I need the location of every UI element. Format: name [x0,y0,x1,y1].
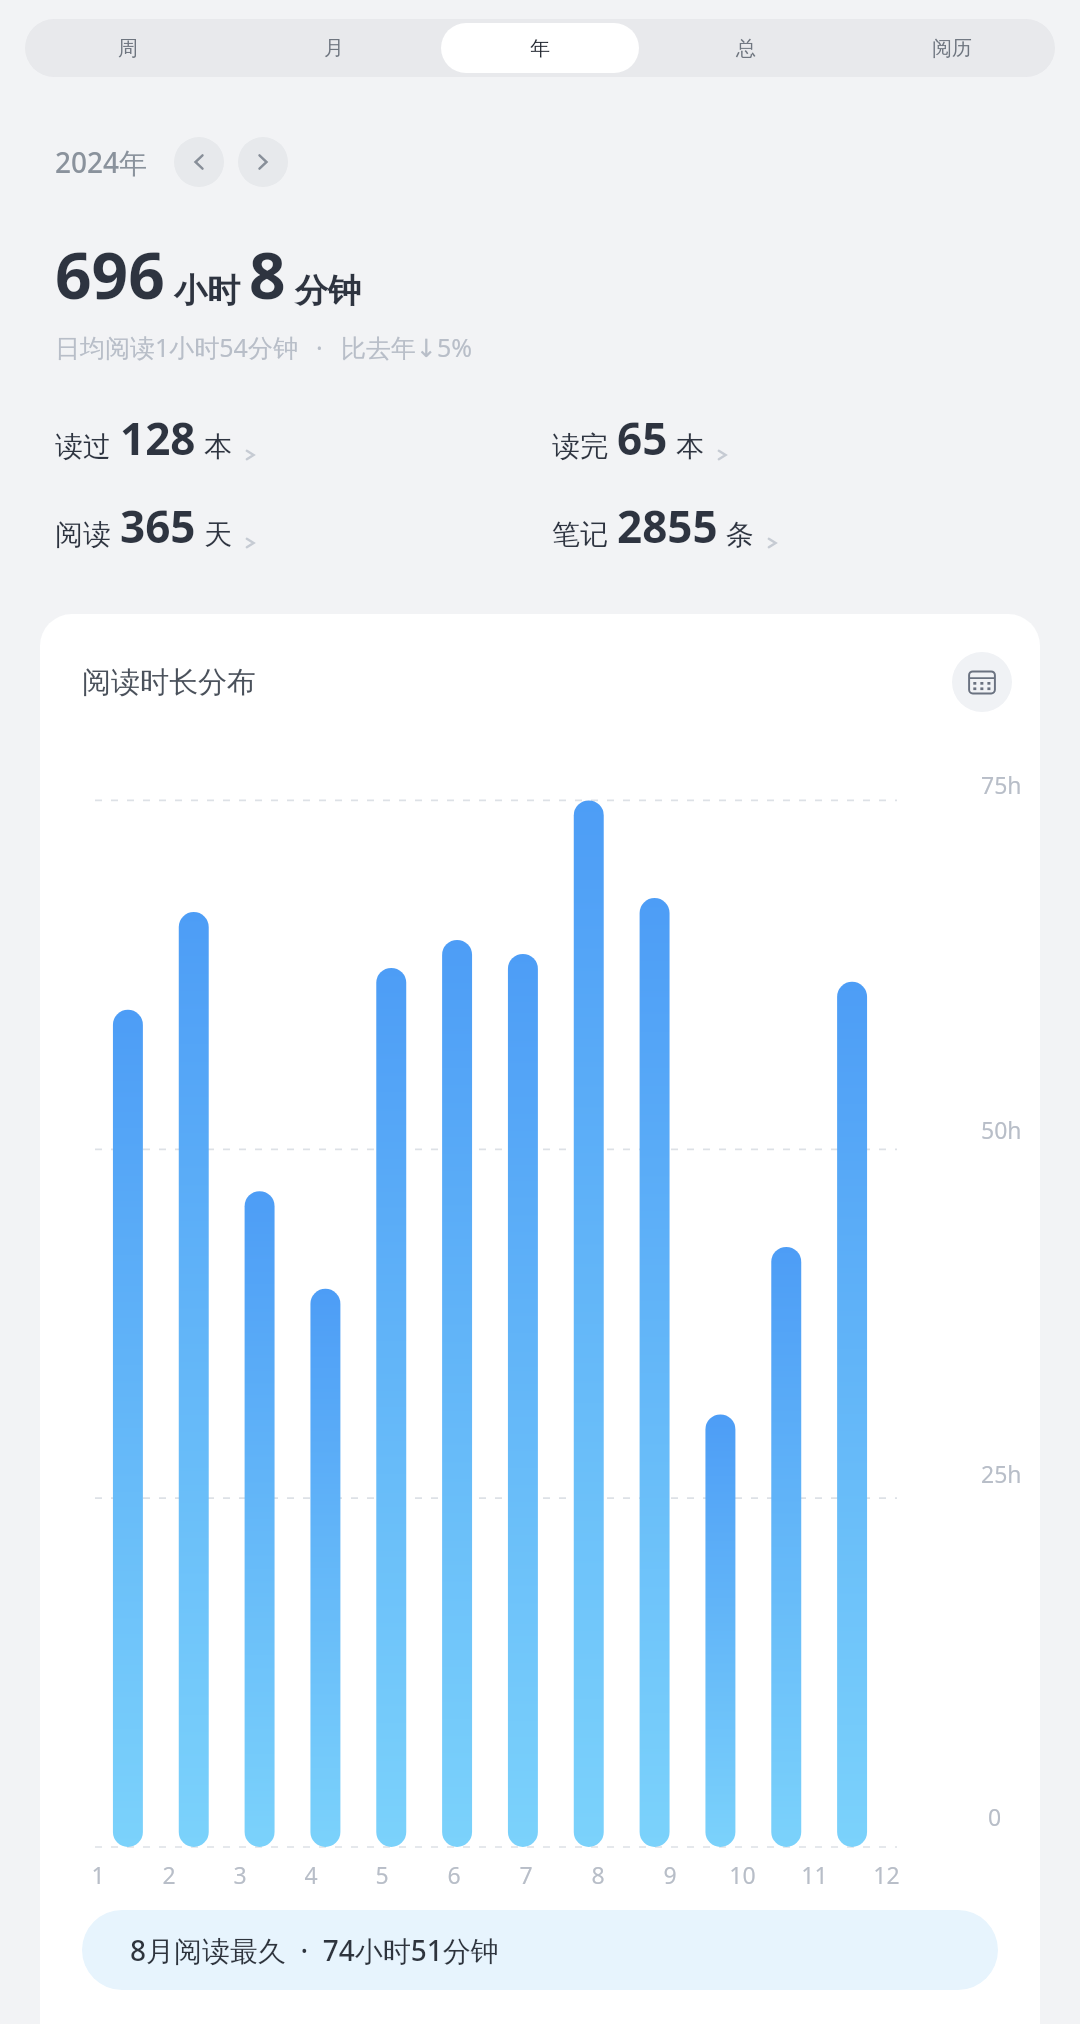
staticText: 696 [55,231,165,318]
staticText: 50h [981,1114,1022,1145]
staticText: 75h [981,769,1022,800]
button[interactable]: Next year [238,137,288,187]
staticText: 本 [204,429,232,464]
button[interactable]: 读过 [55,408,552,468]
staticText: 5 [375,1859,389,1890]
staticText: 9 [663,1859,677,1890]
staticText: 阅历 [932,36,972,61]
button[interactable]: 年 [441,23,639,73]
staticText: 3 [233,1859,247,1890]
staticText: 0 [988,1801,1002,1832]
button[interactable]: 总 [647,23,845,73]
button[interactable]: 读完 [552,408,1050,468]
staticText: 阅读 [55,517,111,552]
staticText: 周 [118,36,138,61]
staticText: 6 [447,1859,461,1890]
button[interactable]: Calendar view [952,652,1012,712]
staticText: 8 [249,231,286,318]
staticText: 读完 [552,429,608,464]
staticText: · [316,330,323,364]
staticText: 总 [736,36,756,61]
button[interactable]: Previous year [174,137,224,187]
button[interactable]: 8月阅读最久 · 74小时51分钟 [82,1910,998,1990]
staticText: 65 [617,408,668,468]
staticText: 8月阅读最久 · 74小时51分钟 [130,1931,499,1969]
staticText: 365 [120,496,196,556]
staticText: 2 [162,1859,176,1890]
staticText: 7 [519,1859,533,1890]
staticText: 25h [981,1458,1022,1489]
staticText: 128 [120,408,196,468]
staticText: 1 [91,1859,105,1890]
staticText: 4 [304,1859,318,1890]
staticText: 年 [530,36,550,61]
button[interactable]: 阅历 [853,23,1051,73]
staticText: 12 [873,1859,900,1890]
staticText: 阅读时长分布 [82,664,256,701]
button[interactable]: 月 [235,23,433,73]
staticText: 条 [726,517,754,552]
staticText: 日均阅读1小时54分钟 [55,330,298,364]
staticText: 本 [676,429,704,464]
staticText: 8 [591,1859,605,1890]
button[interactable]: 笔记 [552,496,1050,556]
button[interactable]: 阅读 [55,496,552,556]
staticText: 笔记 [552,517,608,552]
staticText: 分钟 [295,270,361,312]
staticText: 比去年↓5% [341,330,473,364]
button[interactable]: 周 [29,23,227,73]
staticText: 11 [801,1859,828,1890]
staticText: 小时 [174,270,240,312]
staticText: 2855 [617,496,718,556]
staticText: 10 [729,1859,756,1890]
staticText: 2024年 [55,143,148,181]
staticText: 读过 [55,429,111,464]
staticText: 月 [324,36,344,61]
staticText: 天 [204,517,232,552]
